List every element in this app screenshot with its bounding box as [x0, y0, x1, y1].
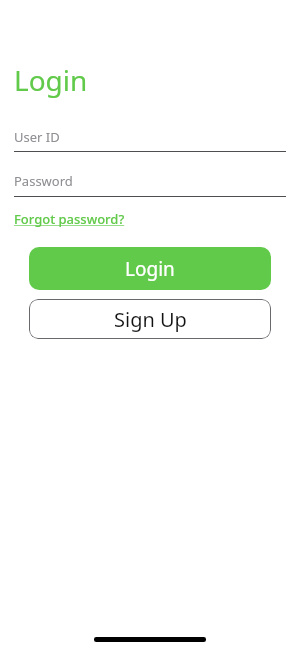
staticText: Forgot password?	[14, 210, 125, 228]
staticText: Password	[14, 172, 73, 190]
button[interactable]	[14, 126, 286, 153]
staticText: Login	[14, 61, 88, 99]
button[interactable]	[14, 170, 286, 198]
button[interactable]: Login	[29, 247, 271, 290]
button[interactable]: Sign Up	[29, 299, 271, 339]
button[interactable]: Forgot password?	[14, 210, 125, 228]
staticText: Sign Up	[114, 306, 187, 333]
staticText: Login	[125, 256, 175, 282]
staticText: User ID	[14, 128, 60, 146]
